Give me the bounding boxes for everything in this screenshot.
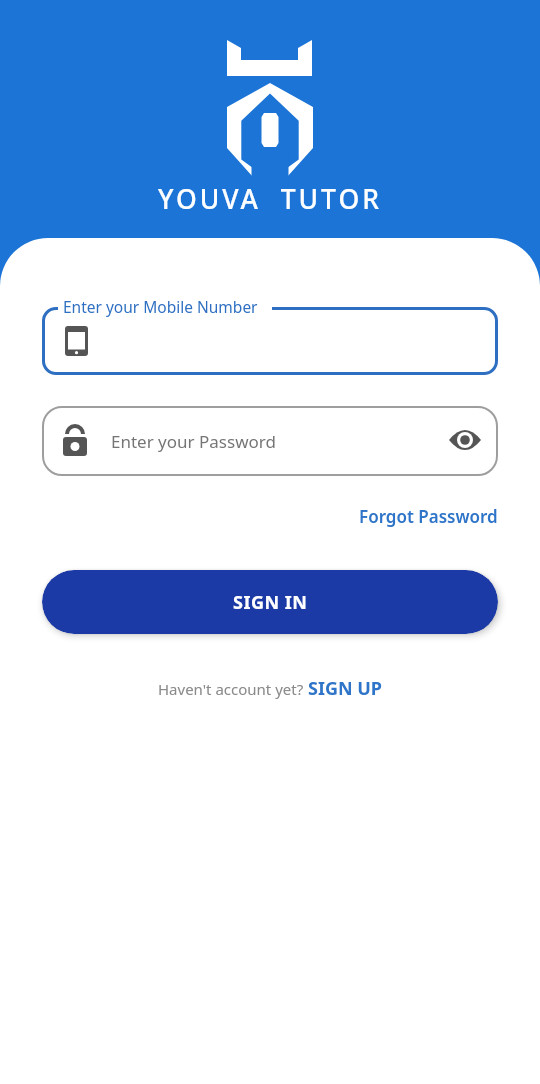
staticText: SIGN IN — [233, 590, 308, 615]
button[interactable]: SIGN UP — [308, 676, 383, 701]
button[interactable]: Forgot Password — [359, 505, 498, 528]
button[interactable] — [42, 307, 498, 375]
staticText: Enter your Mobile Number — [63, 296, 258, 317]
button[interactable] — [449, 427, 481, 453]
staticText: YOUVA TUTOR — [158, 181, 382, 217]
staticText: Enter your Password — [111, 430, 276, 453]
button[interactable]: SIGN IN — [42, 570, 498, 634]
button[interactable] — [42, 406, 498, 476]
staticText: Haven't account yet? — [158, 679, 308, 699]
